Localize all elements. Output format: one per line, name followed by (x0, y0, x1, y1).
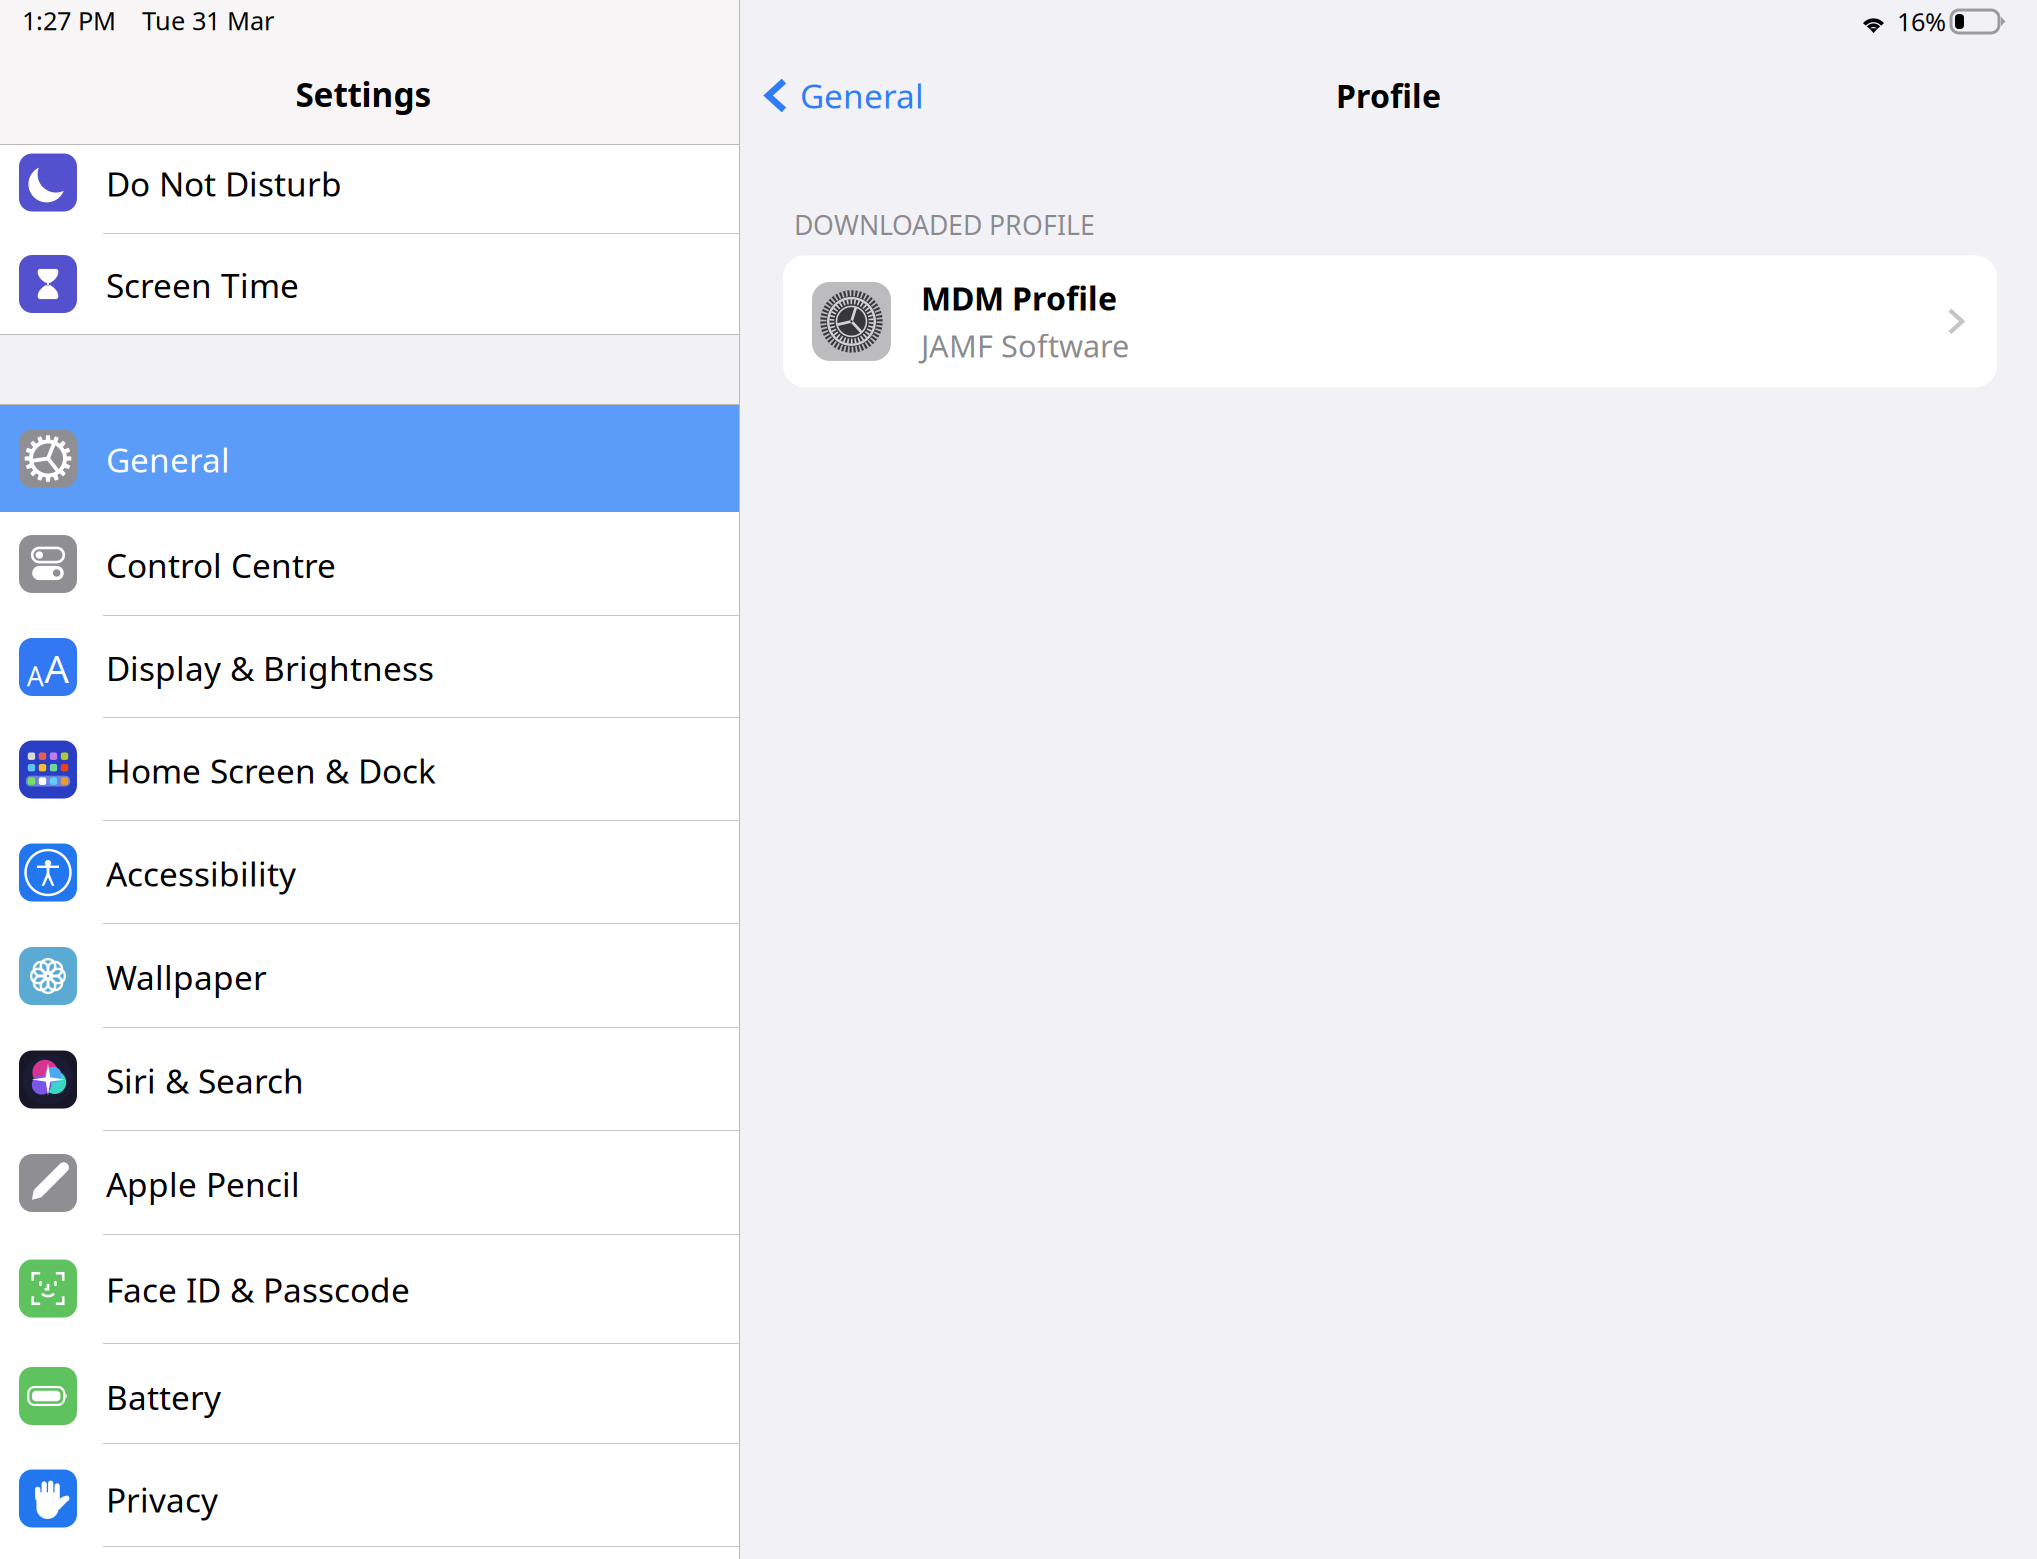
staticText: Wallpaper (106, 955, 267, 999)
button[interactable]: Control Centre (0, 512, 739, 616)
staticText: General (106, 437, 230, 482)
staticText: General (800, 73, 924, 118)
staticText: A (27, 658, 44, 694)
staticText: Privacy (106, 1477, 218, 1522)
staticText: Face ID & Passcode (106, 1267, 410, 1312)
staticText: Home Screen & Dock (106, 748, 436, 793)
staticText: DOWNLOADED PROFILE (794, 207, 1095, 242)
button[interactable]: Face ID & Passcode (0, 1235, 739, 1344)
staticText: Control Centre (106, 543, 336, 587)
button[interactable]: Screen Time (0, 234, 739, 334)
staticText: Apple Pencil (106, 1162, 300, 1206)
staticText: Do Not Disturb (106, 161, 342, 206)
staticText: Settings (295, 72, 431, 116)
staticText: Accessibility (106, 851, 296, 896)
staticText: 16% (1897, 5, 1946, 38)
staticText: MDM Profile (921, 277, 1117, 319)
button[interactable]: Battery (0, 1344, 739, 1444)
button[interactable]: MDM Profile (783, 255, 1997, 387)
button[interactable]: Wallpaper (0, 924, 739, 1028)
button[interactable]: General (740, 63, 924, 128)
staticText: Display & Brightness (106, 646, 434, 690)
staticText: Battery (106, 1375, 221, 1419)
staticText: JAMF Software (921, 325, 1129, 366)
button[interactable]: Siri & Search (0, 1028, 739, 1131)
button[interactable]: Do Not Disturb (0, 145, 739, 234)
staticText: A (44, 642, 69, 694)
button[interactable]: General (0, 405, 739, 512)
staticText: 1:27 PM (22, 4, 116, 37)
button[interactable]: Privacy (0, 1444, 739, 1547)
button[interactable]: Home Screen & Dock (0, 718, 739, 821)
button[interactable]: A (0, 616, 739, 718)
staticText: Siri & Search (106, 1058, 304, 1103)
staticText: Tue 31 Mar (142, 4, 274, 37)
button[interactable]: Accessibility (0, 821, 739, 924)
staticText: Screen Time (106, 263, 299, 307)
button[interactable]: Apple Pencil (0, 1131, 739, 1235)
staticText: Profile (1336, 74, 1441, 117)
